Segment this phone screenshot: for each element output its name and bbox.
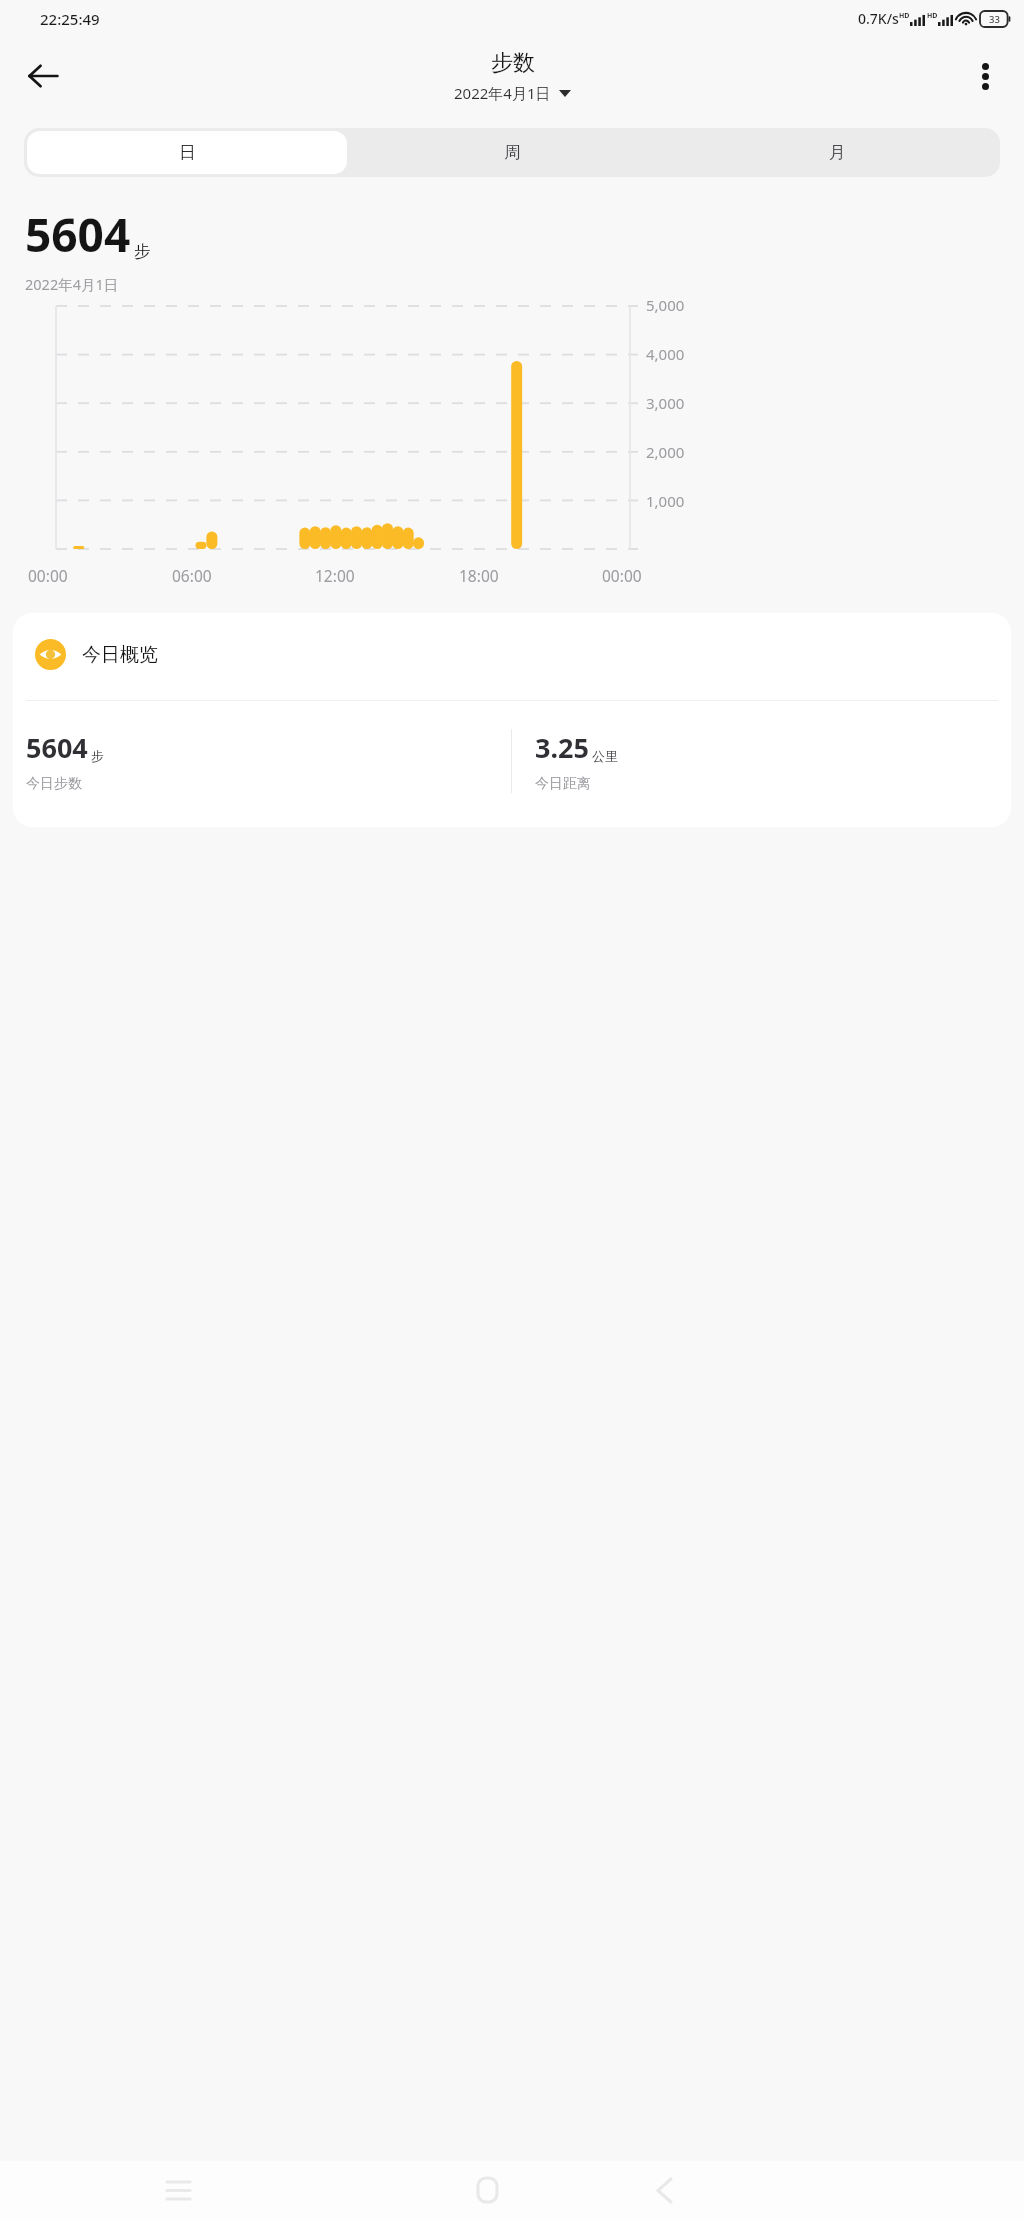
staticText: 月 (829, 142, 846, 163)
button[interactable]: Home (459, 2162, 515, 2218)
button[interactable]: Back (14, 47, 72, 105)
staticText: 3.25 (535, 729, 589, 766)
button[interactable]: Recents (150, 2162, 206, 2218)
staticText: 5,000 (646, 295, 685, 315)
staticText: 周 (504, 142, 521, 163)
staticText: 3,000 (646, 393, 685, 413)
staticText: 00:00 (28, 565, 68, 586)
staticText: HD (899, 11, 910, 21)
staticText: 今日步数 (26, 775, 82, 793)
button[interactable]: 今日概览 (13, 613, 1011, 827)
staticText: 18:00 (459, 565, 499, 586)
button[interactable]: Back (636, 2162, 692, 2218)
staticText: 00:00 (602, 565, 642, 586)
staticText: 2022年4月1日 (25, 274, 119, 294)
staticText: 步 (134, 241, 151, 262)
staticText: 步 (91, 748, 104, 764)
button[interactable]: 2022年4月1日 (454, 83, 571, 103)
button[interactable]: 周 (353, 131, 672, 174)
staticText: 06:00 (172, 565, 212, 586)
button[interactable]: 日 (27, 131, 347, 174)
staticText: 1,000 (646, 491, 685, 511)
staticText: 日 (179, 142, 196, 163)
staticText: 2022年4月1日 (454, 83, 551, 103)
staticText: 5604 (25, 203, 131, 266)
button[interactable]: More options (958, 49, 1012, 103)
staticText: 5604 (26, 729, 88, 766)
staticText: 今日距离 (535, 775, 591, 793)
staticText: 步数 (491, 49, 535, 77)
button[interactable]: 月 (678, 131, 997, 174)
staticText: 22:25:49 (40, 9, 100, 29)
staticText: 4,000 (646, 344, 685, 364)
staticText: 12:00 (315, 565, 355, 586)
staticText: 今日概览 (82, 643, 158, 667)
staticText: 2,000 (646, 442, 685, 462)
staticText: 0.7K/s (858, 9, 899, 28)
staticText: 公里 (592, 748, 618, 764)
staticText: HD (927, 11, 938, 21)
staticText: 33 (989, 13, 1000, 26)
